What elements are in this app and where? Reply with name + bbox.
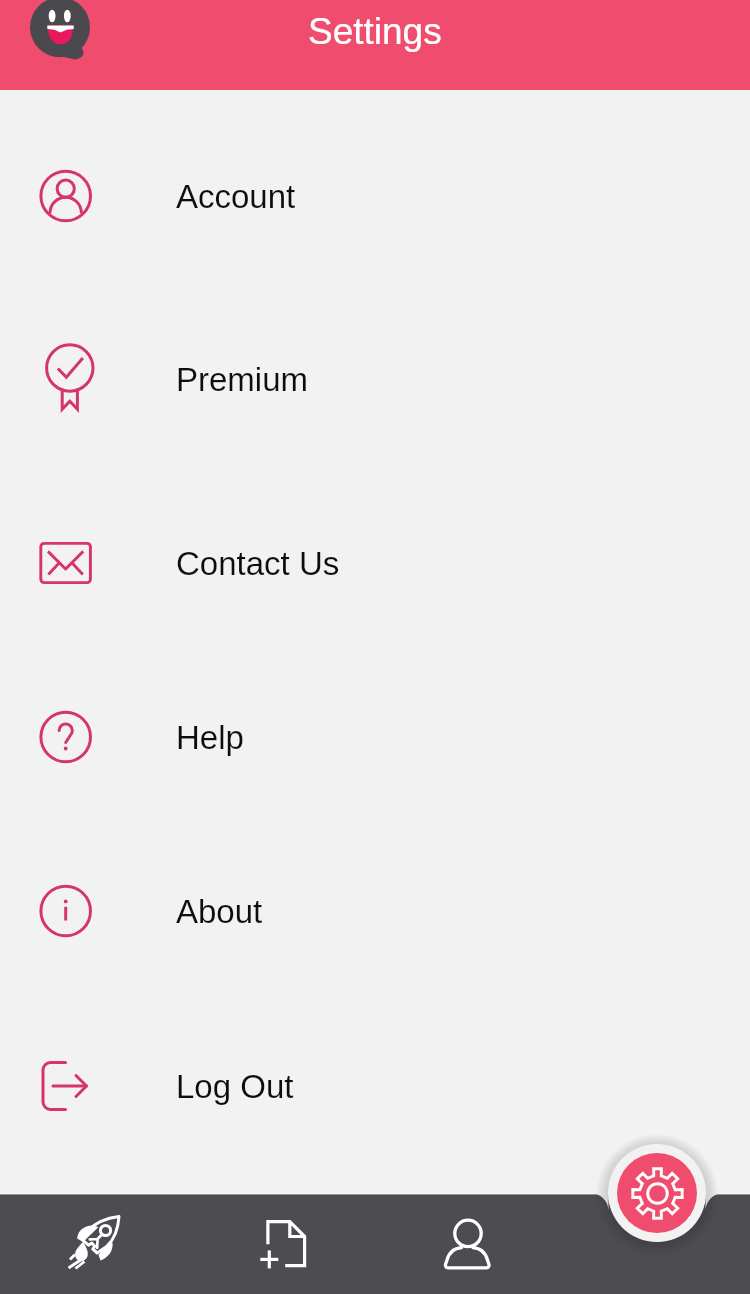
button[interactable]: New note [187,1193,374,1294]
button[interactable]: Explore [0,1193,187,1294]
button[interactable]: Settings [608,1144,706,1242]
staticText: About [176,893,263,930]
button[interactable]: Premium [0,290,750,468]
staticText: Log Out [176,1068,294,1105]
staticText: Contact Us [176,545,340,582]
staticText: Settings [308,11,442,52]
button[interactable]: About [0,822,750,1000]
staticText: Help [176,719,244,756]
button[interactable]: Log Out [0,997,750,1175]
staticText: Premium [176,361,309,398]
button[interactable]: Profile [374,1193,562,1294]
button[interactable]: Account [0,107,750,285]
button[interactable]: Contact Us [0,474,750,652]
button[interactable]: App logo [22,0,98,76]
staticText: Account [176,178,296,215]
button[interactable]: Help [0,648,750,826]
